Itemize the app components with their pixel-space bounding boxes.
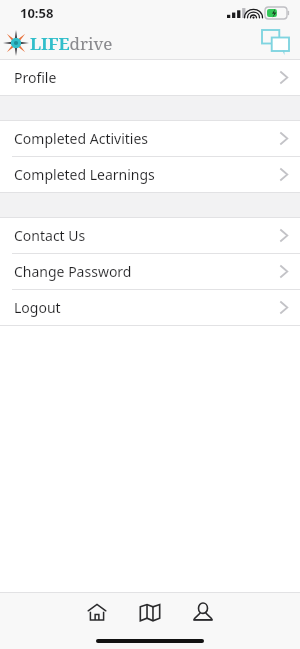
staticText: Profile — [14, 68, 57, 87]
button[interactable]: Map — [127, 593, 173, 631]
staticText: Contact Us — [14, 226, 86, 245]
staticText: Completed Activities — [14, 129, 149, 148]
button[interactable]: Contact Us — [0, 218, 300, 253]
button[interactable]: Profile — [0, 60, 300, 95]
button[interactable]: Change Password — [0, 254, 300, 289]
button[interactable]: Home — [74, 593, 120, 631]
staticText: Completed Learnings — [14, 165, 155, 184]
button[interactable]: Completed Activities — [0, 121, 300, 156]
button[interactable]: Logout — [0, 290, 300, 325]
button[interactable]: Completed Learnings — [0, 157, 300, 192]
staticText: Logout — [14, 298, 61, 317]
staticText: LIFEdrive — [30, 32, 113, 55]
staticText: Change Password — [14, 262, 132, 281]
button[interactable]: Profile — [180, 593, 226, 631]
button[interactable]: Messages — [258, 26, 292, 59]
staticText: 10:58 — [20, 4, 54, 22]
